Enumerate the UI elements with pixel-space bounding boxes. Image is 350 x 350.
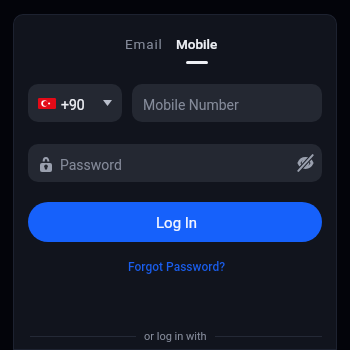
staticText: Mobile Number — [143, 97, 239, 113]
button[interactable]: Email — [121, 34, 167, 54]
button[interactable]: Country code +90 — [28, 84, 122, 122]
button[interactable]: Log In — [28, 202, 322, 242]
staticText: +90 — [61, 97, 85, 113]
staticText: Forgot Password? — [128, 260, 226, 274]
staticText: Mobile — [176, 36, 218, 52]
staticText: Log In — [156, 214, 198, 232]
staticText: or log in with — [144, 330, 207, 343]
button[interactable]: Mobile — [172, 34, 222, 54]
button[interactable]: Mobile Number — [132, 84, 322, 122]
staticText: Password — [60, 157, 122, 173]
staticText: Email — [125, 36, 163, 52]
button[interactable]: Password — [28, 144, 322, 182]
button[interactable]: Forgot Password? — [124, 256, 230, 278]
button[interactable]: Show password — [294, 152, 316, 174]
